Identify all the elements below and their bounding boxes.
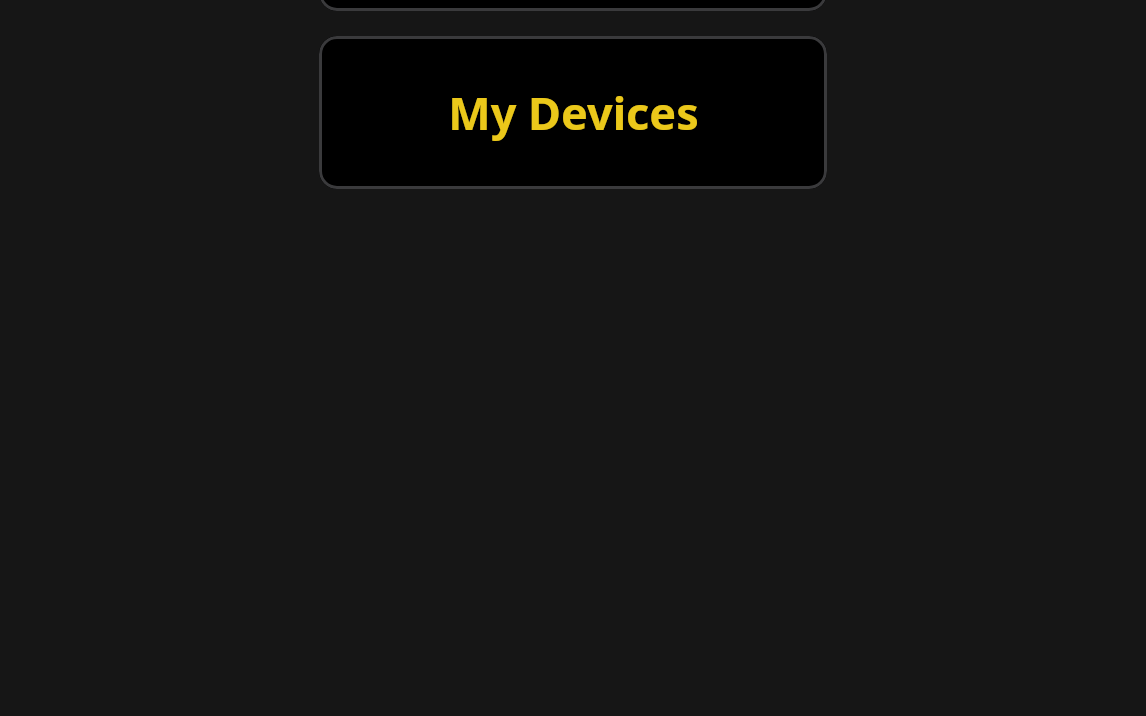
- staticText: My Devices: [448, 82, 699, 143]
- button[interactable]: My Devices: [319, 36, 827, 189]
- button[interactable]: Previous item: [319, 0, 827, 11]
